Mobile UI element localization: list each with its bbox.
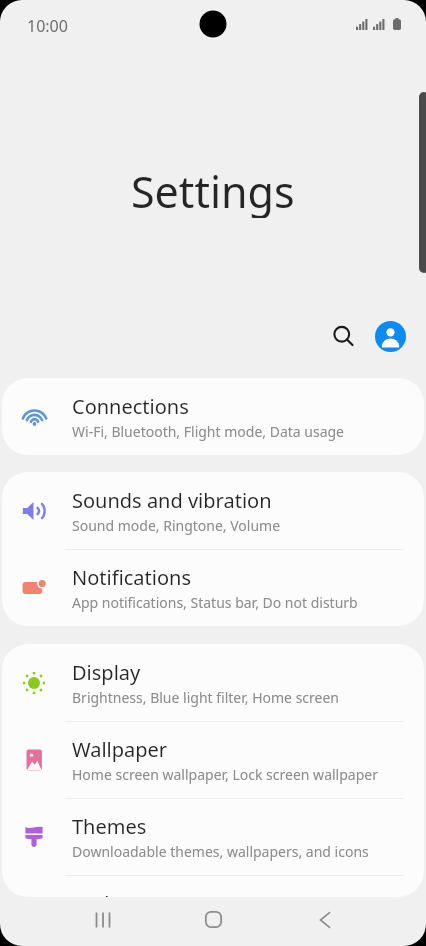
button[interactable]: Home [186, 893, 241, 946]
staticText: Display [72, 659, 141, 686]
staticText: Lock screen [72, 890, 183, 897]
staticText: Sounds and vibration [72, 487, 272, 514]
staticText: Settings [131, 162, 295, 218]
button[interactable]: Display [2, 644, 424, 721]
staticText: Brightness, Blue light filter, Home scre… [72, 688, 340, 707]
staticText: Connections [72, 393, 189, 420]
button[interactable]: Search [320, 313, 366, 359]
button[interactable]: Lock screen [2, 875, 424, 897]
button[interactable]: Back [297, 893, 352, 946]
staticText: Home screen wallpaper, Lock screen wallp… [72, 765, 378, 784]
staticText: Wi-Fi, Bluetooth, Flight mode, Data usag… [72, 422, 345, 441]
button[interactable]: Connections [2, 378, 424, 455]
button[interactable]: Recents [75, 893, 130, 946]
staticText: Wallpaper [72, 736, 168, 763]
button[interactable]: Themes [2, 798, 424, 875]
staticText: Downloadable themes, wallpapers, and ico… [72, 842, 369, 861]
staticText: Notifications [72, 564, 191, 591]
staticText: App notifications, Status bar, Do not di… [72, 593, 358, 612]
staticText: 10:00 [27, 15, 68, 37]
staticText: Sound mode, Ringtone, Volume [72, 516, 281, 535]
button[interactable]: Notifications [2, 549, 424, 626]
staticText: Themes [72, 813, 147, 840]
button[interactable]: Wallpaper [2, 721, 424, 798]
button[interactable]: Sounds and vibration [2, 472, 424, 549]
button[interactable]: Account [367, 313, 413, 359]
